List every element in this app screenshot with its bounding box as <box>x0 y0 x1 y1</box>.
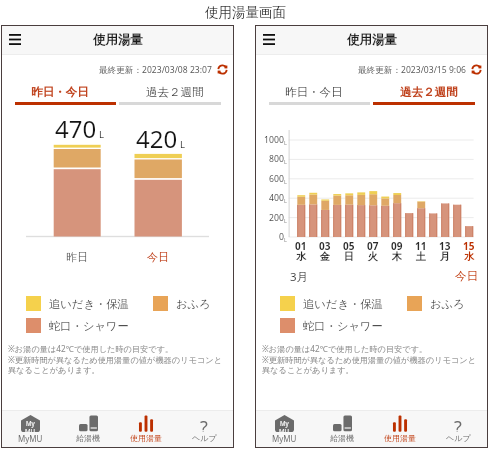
staticText: 05 <box>343 239 355 253</box>
staticText: 200 <box>269 212 284 224</box>
staticText: 01 <box>295 239 307 253</box>
button[interactable]: Refresh <box>470 63 483 76</box>
staticText: 昨日・今日 <box>31 85 89 99</box>
staticText: 15 <box>463 239 475 253</box>
staticText: L <box>284 217 287 224</box>
staticText: 土 <box>416 250 426 263</box>
button[interactable]: Menu <box>2 27 28 53</box>
staticText: MU <box>25 427 36 435</box>
button[interactable]: 給湯機 <box>313 411 371 447</box>
button[interactable]: 過去２週間 <box>371 77 487 106</box>
staticText: 月 <box>440 250 450 263</box>
button[interactable]: 昨日・今日 <box>256 77 371 106</box>
staticText: 使用湯量 <box>347 32 397 48</box>
staticText: My <box>280 419 289 427</box>
staticText: おふろ <box>430 297 465 311</box>
staticText: 異なることがあります。 <box>262 365 354 375</box>
staticText: 給湯機 <box>76 433 100 443</box>
staticText: ※更新時間が異なるため使用湯量の値が機器のリモコンと <box>8 354 223 365</box>
staticText: 蛇口・シャワー <box>303 319 383 333</box>
staticText: L <box>284 197 287 204</box>
staticText: 火 <box>368 250 378 263</box>
staticText: ヘルプ <box>192 433 217 443</box>
staticText: L <box>284 178 287 185</box>
staticText: おふろ <box>176 297 211 311</box>
staticText: 最終更新：2023/03/08 23:07 <box>99 64 212 76</box>
staticText: 過去２週間 <box>400 85 458 99</box>
staticText: 使用湯量 <box>130 433 162 443</box>
staticText: 水 <box>464 250 474 263</box>
staticText: 11 <box>415 239 427 253</box>
staticText: 09 <box>391 239 403 253</box>
staticText: 金 <box>320 250 330 263</box>
staticText: 追いだき・保温 <box>303 297 383 311</box>
button[interactable]: My <box>2 411 59 447</box>
button[interactable]: ? <box>175 411 233 447</box>
button[interactable]: 使用湯量 <box>371 411 429 447</box>
staticText: 使用湯量 <box>93 32 143 48</box>
staticText: MyMU <box>272 433 297 444</box>
staticText: 0 <box>279 231 284 243</box>
staticText: 過去２週間 <box>146 85 204 99</box>
staticText: 03 <box>319 239 331 253</box>
button[interactable]: 使用湯量 <box>117 411 175 447</box>
button[interactable]: 昨日・今日 <box>2 77 117 106</box>
button[interactable]: 給湯機 <box>59 411 117 447</box>
staticText: ? <box>200 415 208 432</box>
staticText: 400 <box>269 192 284 204</box>
staticText: ※お湯の量は42℃で使用した時の目安です。 <box>8 343 174 354</box>
button[interactable]: My <box>256 411 313 447</box>
staticText: 異なることがあります。 <box>8 365 100 375</box>
staticText: My <box>26 419 35 427</box>
button[interactable]: Refresh <box>216 63 229 76</box>
staticText: 800 <box>269 153 284 165</box>
staticText: ※更新時間が異なるため使用湯量の値が機器のリモコンと <box>262 354 477 365</box>
staticText: 使用湯量画面 <box>205 4 286 21</box>
staticText: L <box>99 128 104 141</box>
staticText: 今日 <box>455 269 478 283</box>
staticText: L <box>284 236 287 243</box>
staticText: 追いだき・保温 <box>49 297 129 311</box>
staticText: 今日 <box>147 250 169 264</box>
staticText: 昨日・今日 <box>285 85 343 99</box>
staticText: 使用湯量 <box>384 433 416 443</box>
staticText: MyMU <box>18 433 43 444</box>
staticText: 水 <box>296 250 306 263</box>
staticText: 1000 <box>264 134 284 146</box>
staticText: 給湯機 <box>330 433 354 443</box>
button[interactable]: 過去２週間 <box>117 77 233 106</box>
staticText: 昨日 <box>66 250 88 264</box>
staticText: 木 <box>392 250 402 263</box>
staticText: 日 <box>344 250 354 263</box>
staticText: 最終更新：2023/03/15 9:06 <box>358 64 466 76</box>
staticText: 蛇口・シャワー <box>49 319 129 333</box>
staticText: 420 <box>136 122 178 155</box>
button[interactable]: ? <box>429 411 487 447</box>
staticText: ヘルプ <box>446 433 471 443</box>
staticText: L <box>284 158 287 165</box>
button[interactable]: Menu <box>256 27 282 53</box>
staticText: ※お湯の量は42℃で使用した時の目安です。 <box>262 343 428 354</box>
staticText: MU <box>279 427 290 435</box>
staticText: L <box>180 138 185 151</box>
staticText: 07 <box>367 239 379 253</box>
staticText: ? <box>454 415 462 432</box>
staticText: 3月 <box>290 269 309 285</box>
staticText: L <box>284 139 287 146</box>
staticText: 600 <box>269 173 284 185</box>
staticText: 13 <box>439 239 451 253</box>
staticText: 470 <box>55 112 97 145</box>
